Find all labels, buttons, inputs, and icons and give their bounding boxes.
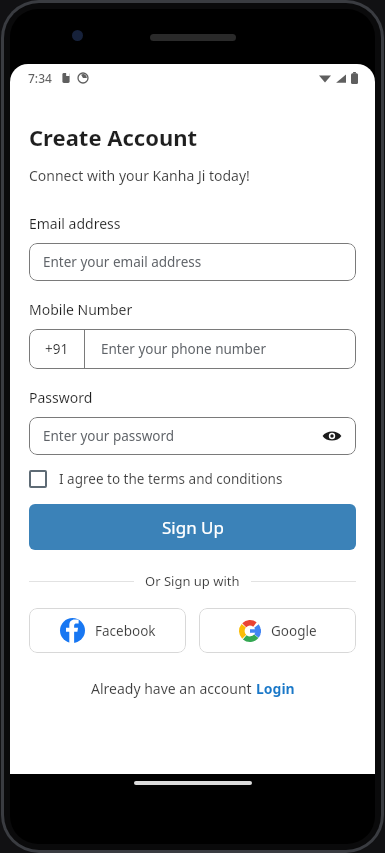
staticText: I agree to the terms and conditions xyxy=(59,470,283,488)
button[interactable]: Login xyxy=(256,679,295,698)
button[interactable]: Enter your password xyxy=(29,417,356,455)
staticText: Google xyxy=(271,622,317,640)
button[interactable]: I agree to the terms and conditions xyxy=(29,470,283,488)
staticText: Facebook xyxy=(95,622,156,640)
button[interactable]: Show password xyxy=(320,424,344,448)
staticText: Enter your email address xyxy=(43,253,202,271)
button[interactable]: Sign Up xyxy=(29,504,356,550)
staticText: Mobile Number xyxy=(29,300,133,319)
staticText: Enter your password xyxy=(43,427,175,445)
button[interactable]: Facebook xyxy=(29,608,186,653)
staticText: +91 xyxy=(45,340,69,358)
staticText: Password xyxy=(29,388,93,407)
button[interactable]: Google xyxy=(199,608,356,653)
staticText: Email address xyxy=(29,214,121,233)
button[interactable]: +91 xyxy=(29,329,356,369)
staticText: Login xyxy=(256,679,295,698)
staticText: Or Sign up with xyxy=(145,572,240,590)
staticText: Enter your phone number xyxy=(101,340,266,358)
staticText: 7:34 xyxy=(28,70,52,86)
staticText: Already have an account xyxy=(91,679,256,698)
button[interactable]: Enter your email address xyxy=(29,243,356,281)
staticText: Connect with your Kanha Ji today! xyxy=(29,166,250,185)
staticText: Sign Up xyxy=(162,516,224,539)
staticText: Create Account xyxy=(29,122,198,152)
